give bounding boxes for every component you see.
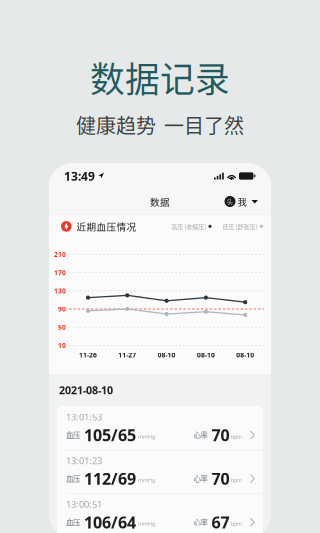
staticText: 心率 bbox=[193, 473, 207, 484]
staticText: mmHg bbox=[138, 433, 155, 440]
staticText: 13:00:51 bbox=[66, 498, 102, 510]
staticText: 105/65 bbox=[84, 424, 136, 446]
staticText: 170 bbox=[54, 268, 66, 277]
staticText: mmHg bbox=[138, 520, 155, 527]
staticText: 高压 (收缩压) bbox=[171, 222, 206, 231]
staticText: 2021-08-10 bbox=[59, 383, 113, 397]
staticText: 13:01:53 bbox=[66, 411, 102, 423]
staticText: 08-10 bbox=[236, 351, 254, 359]
staticText: 10 bbox=[58, 341, 66, 350]
staticText: 血压 bbox=[66, 473, 80, 484]
button[interactable]: 13:01:53 bbox=[57, 406, 263, 450]
staticText: bpm bbox=[231, 433, 242, 440]
staticText: 11-27 bbox=[118, 351, 136, 359]
button[interactable]: 头 bbox=[221, 191, 261, 212]
staticText: mmHg bbox=[138, 477, 155, 484]
staticText: 我 bbox=[237, 195, 246, 208]
staticText: 健康趋势 一目了然 bbox=[76, 110, 244, 139]
staticText: 血压 bbox=[66, 430, 80, 440]
staticText: 数据记录 bbox=[90, 52, 230, 102]
staticText: 11-26 bbox=[79, 351, 97, 359]
staticText: 67 bbox=[211, 512, 229, 533]
staticText: 13:01:23 bbox=[66, 454, 102, 467]
staticText: 低压 (舒张压) bbox=[223, 222, 258, 231]
staticText: 130 bbox=[54, 286, 66, 295]
button[interactable]: 13:01:23 bbox=[57, 450, 263, 493]
staticText: 心率 bbox=[193, 430, 207, 440]
button[interactable]: 13:00:51 bbox=[57, 493, 263, 533]
staticText: 210 bbox=[54, 250, 66, 259]
staticText: bpm bbox=[231, 520, 242, 527]
staticText: 50 bbox=[58, 323, 66, 332]
staticText: 70 bbox=[211, 468, 229, 489]
staticText: 106/64 bbox=[84, 512, 136, 533]
staticText: 70 bbox=[211, 424, 229, 446]
staticText: 112/69 bbox=[84, 468, 136, 489]
staticText: 08-10 bbox=[158, 351, 176, 359]
staticText: 心率 bbox=[193, 517, 207, 528]
staticText: 血压 bbox=[66, 517, 80, 528]
staticText: 近期血压情况 bbox=[77, 219, 137, 233]
staticText: 13:49 bbox=[64, 168, 95, 184]
staticText: 90 bbox=[58, 305, 66, 313]
staticText: 数据 bbox=[150, 194, 170, 208]
staticText: 08-10 bbox=[197, 351, 215, 359]
staticText: bpm bbox=[231, 477, 242, 484]
staticText: 头 bbox=[226, 197, 233, 206]
